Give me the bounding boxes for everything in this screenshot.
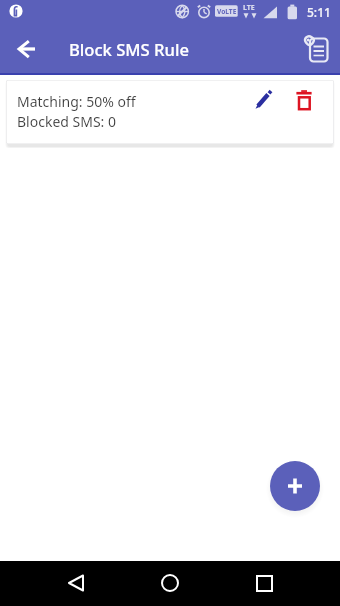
button[interactable]: Matching: 50% off xyxy=(6,80,334,144)
staticText: VoLTE xyxy=(217,7,237,16)
staticText: LTE xyxy=(243,3,255,13)
button[interactable]: Navigate up xyxy=(7,29,47,69)
staticText: Block SMS Rule xyxy=(69,38,189,61)
button[interactable]: Delete xyxy=(288,86,320,118)
staticText: 5:11 xyxy=(307,4,331,20)
button[interactable]: Add xyxy=(270,461,320,511)
button[interactable]: Home xyxy=(150,563,190,603)
button[interactable]: Edit xyxy=(246,85,282,121)
staticText: Blocked SMS: 0 xyxy=(17,112,116,131)
staticText: Matching: 50% off xyxy=(17,92,136,111)
button[interactable]: Call log xyxy=(297,29,337,69)
button[interactable]: Back xyxy=(56,563,96,603)
button[interactable]: Recent apps xyxy=(244,563,284,603)
